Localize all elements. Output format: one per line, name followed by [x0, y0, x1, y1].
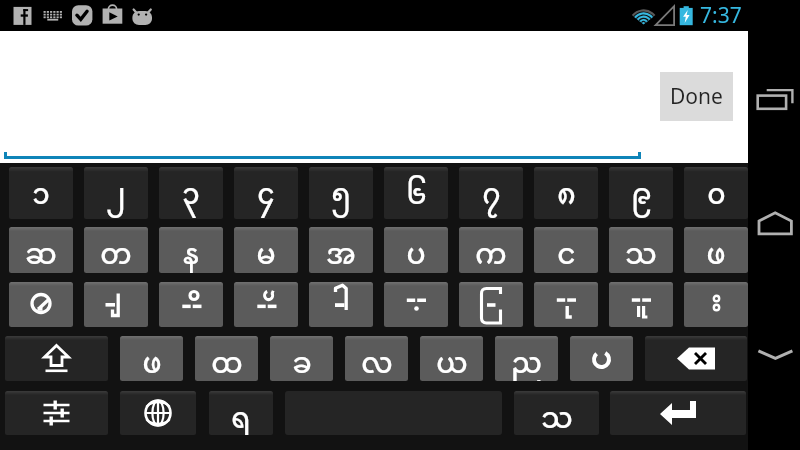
- staticText: သ: [541, 391, 573, 435]
- staticText: ထ: [211, 336, 243, 381]
- button[interactable]: သ: [609, 227, 673, 273]
- button[interactable]: ပ: [384, 227, 448, 273]
- staticText: ၈: [557, 167, 576, 219]
- button[interactable]: ၁: [9, 167, 73, 219]
- staticText: က: [475, 227, 507, 273]
- staticText: ၇: [482, 167, 501, 219]
- button[interactable]: ၃: [159, 167, 223, 219]
- button[interactable]: Change language: [120, 391, 196, 435]
- button[interactable]: ၀: [684, 167, 748, 219]
- button[interactable]: ၂: [84, 167, 148, 219]
- button[interactable]: Dot below: [384, 282, 448, 327]
- button[interactable]: က: [459, 227, 523, 273]
- staticText: ယ: [436, 336, 468, 381]
- staticText: ၄: [257, 167, 275, 219]
- button[interactable]: ခ: [270, 336, 333, 381]
- button[interactable]: Enter: [610, 391, 746, 435]
- button[interactable]: Keyboard settings: [5, 391, 108, 435]
- button[interactable]: ရ: [209, 391, 273, 435]
- button[interactable]: မ: [234, 227, 298, 273]
- staticText: ဆ: [25, 227, 57, 273]
- button[interactable]: လ: [345, 336, 408, 381]
- button[interactable]: Visarga: [684, 282, 748, 327]
- button[interactable]: ယ: [420, 336, 483, 381]
- button[interactable]: Home: [748, 180, 800, 264]
- button[interactable]: Vowel sign tall aa: [309, 282, 373, 327]
- button[interactable]: Hide keyboard: [748, 320, 800, 404]
- button[interactable]: Vowel sign aa: [570, 336, 633, 381]
- staticText: ည: [511, 336, 542, 381]
- staticText: သ: [625, 227, 657, 273]
- button[interactable]: ဆ: [9, 227, 73, 273]
- button[interactable]: ၄: [234, 167, 298, 219]
- button[interactable]: Vowel sign uu: [609, 282, 673, 327]
- staticText: Done: [670, 82, 723, 111]
- staticText: အ: [326, 227, 356, 273]
- staticText: န: [183, 227, 199, 273]
- button[interactable]: Vowel sign ii: [234, 282, 298, 327]
- button[interactable]: Recent apps: [748, 60, 800, 144]
- staticText: ရ: [231, 391, 251, 435]
- staticText: ခ: [292, 336, 312, 381]
- button[interactable]: တ: [84, 227, 148, 273]
- button[interactable]: Shift: [5, 336, 108, 381]
- button[interactable]: ၈: [534, 167, 598, 219]
- staticText: ၀: [707, 167, 726, 219]
- staticText: 7:37: [700, 1, 742, 30]
- button[interactable]: ဖ: [120, 336, 183, 381]
- button[interactable]: ဖ: [684, 227, 748, 273]
- button[interactable]: င: [534, 227, 598, 273]
- staticText: ဖ: [142, 336, 162, 381]
- staticText: ၅: [331, 167, 351, 219]
- button[interactable]: သ: [514, 391, 599, 435]
- staticText: ပ: [406, 227, 426, 273]
- staticText: လ: [361, 336, 393, 381]
- button[interactable]: ၅: [309, 167, 373, 219]
- button[interactable]: အ: [309, 227, 373, 273]
- button[interactable]: ၇: [459, 167, 523, 219]
- staticText: တ: [100, 227, 132, 273]
- staticText: ၃: [182, 167, 200, 219]
- staticText: င: [557, 227, 576, 273]
- staticText: ၉: [631, 167, 652, 219]
- staticText: ၂: [106, 167, 126, 219]
- staticText: ၆: [406, 167, 427, 219]
- button[interactable]: ထ: [195, 336, 258, 381]
- button[interactable]: Backspace: [645, 336, 747, 381]
- button[interactable]: Vowel sign e: [9, 282, 73, 327]
- staticText: ဖ: [706, 227, 726, 273]
- button[interactable]: ည: [495, 336, 558, 381]
- button[interactable]: န: [159, 227, 223, 273]
- staticText: မ: [256, 227, 276, 273]
- staticText: ၁: [32, 167, 50, 219]
- button[interactable]: ၉: [609, 167, 673, 219]
- button[interactable]: Vowel sign u: [534, 282, 598, 327]
- button[interactable]: Medial ra: [459, 282, 523, 327]
- button[interactable]: Done: [660, 72, 733, 121]
- button[interactable]: Vowel sign i: [159, 282, 223, 327]
- button[interactable]: Medial ya: [84, 282, 148, 327]
- button[interactable]: ၆: [384, 167, 448, 219]
